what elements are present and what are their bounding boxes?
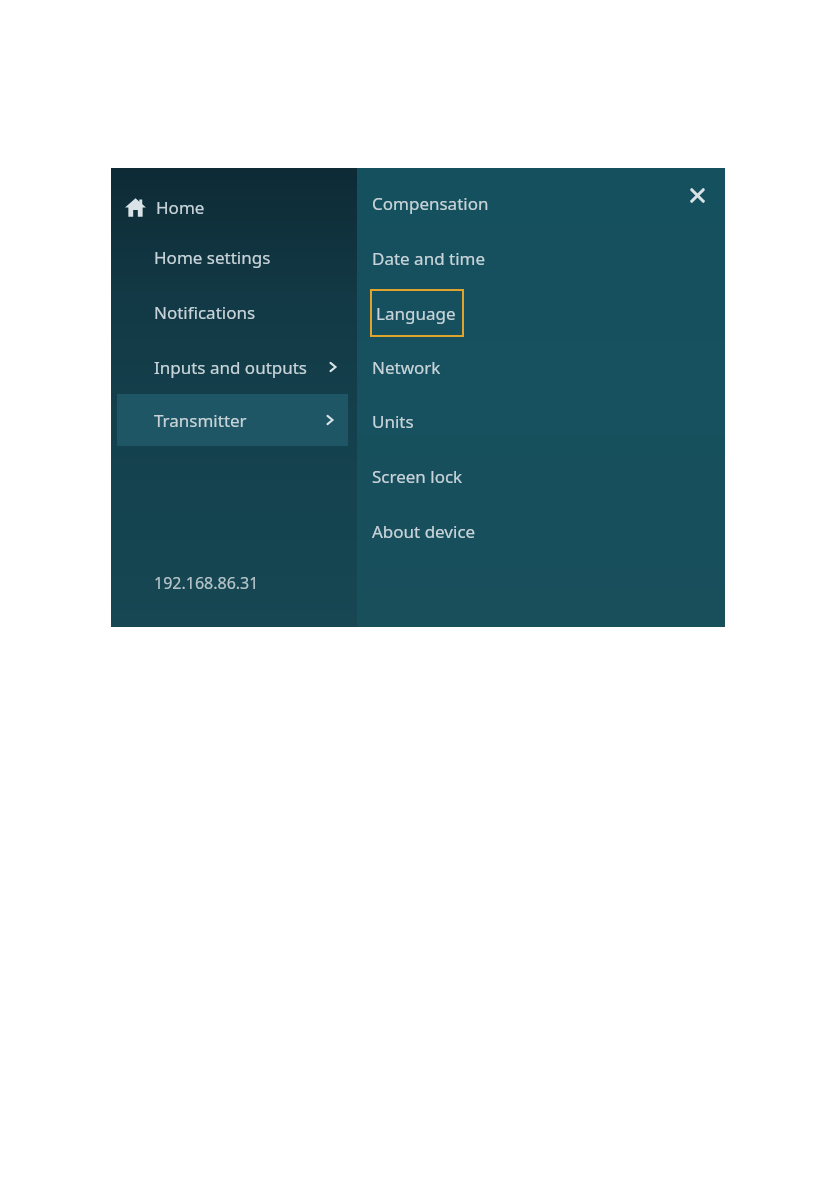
- button[interactable]: Close: [678, 176, 716, 214]
- button[interactable]: Network: [370, 344, 650, 390]
- button[interactable]: Compensation: [370, 180, 650, 226]
- staticText: Compensation: [372, 192, 489, 215]
- staticText: Screen lock: [372, 465, 463, 488]
- staticText: About device: [372, 520, 476, 543]
- button[interactable]: About device: [370, 508, 650, 554]
- staticText: 192.168.86.31: [154, 572, 259, 594]
- staticText: Transmitter: [154, 409, 247, 432]
- button[interactable]: Language: [370, 289, 464, 337]
- staticText: Network: [372, 356, 441, 379]
- button[interactable]: Inputs and outputs: [111, 344, 357, 390]
- staticText: Home: [156, 196, 205, 219]
- staticText: Date and time: [372, 247, 486, 270]
- button[interactable]: Transmitter: [117, 394, 348, 446]
- button[interactable]: Home settings: [111, 234, 357, 280]
- staticText: Home settings: [154, 246, 271, 269]
- staticText: Units: [372, 410, 414, 433]
- button[interactable]: Units: [370, 398, 650, 444]
- button[interactable]: Date and time: [370, 235, 650, 281]
- button[interactable]: Home: [111, 184, 357, 230]
- button[interactable]: Notifications: [111, 289, 357, 335]
- button[interactable]: Screen lock: [370, 453, 650, 499]
- staticText: Language: [376, 302, 456, 325]
- staticText: Inputs and outputs: [154, 356, 308, 379]
- staticText: Notifications: [154, 301, 256, 324]
